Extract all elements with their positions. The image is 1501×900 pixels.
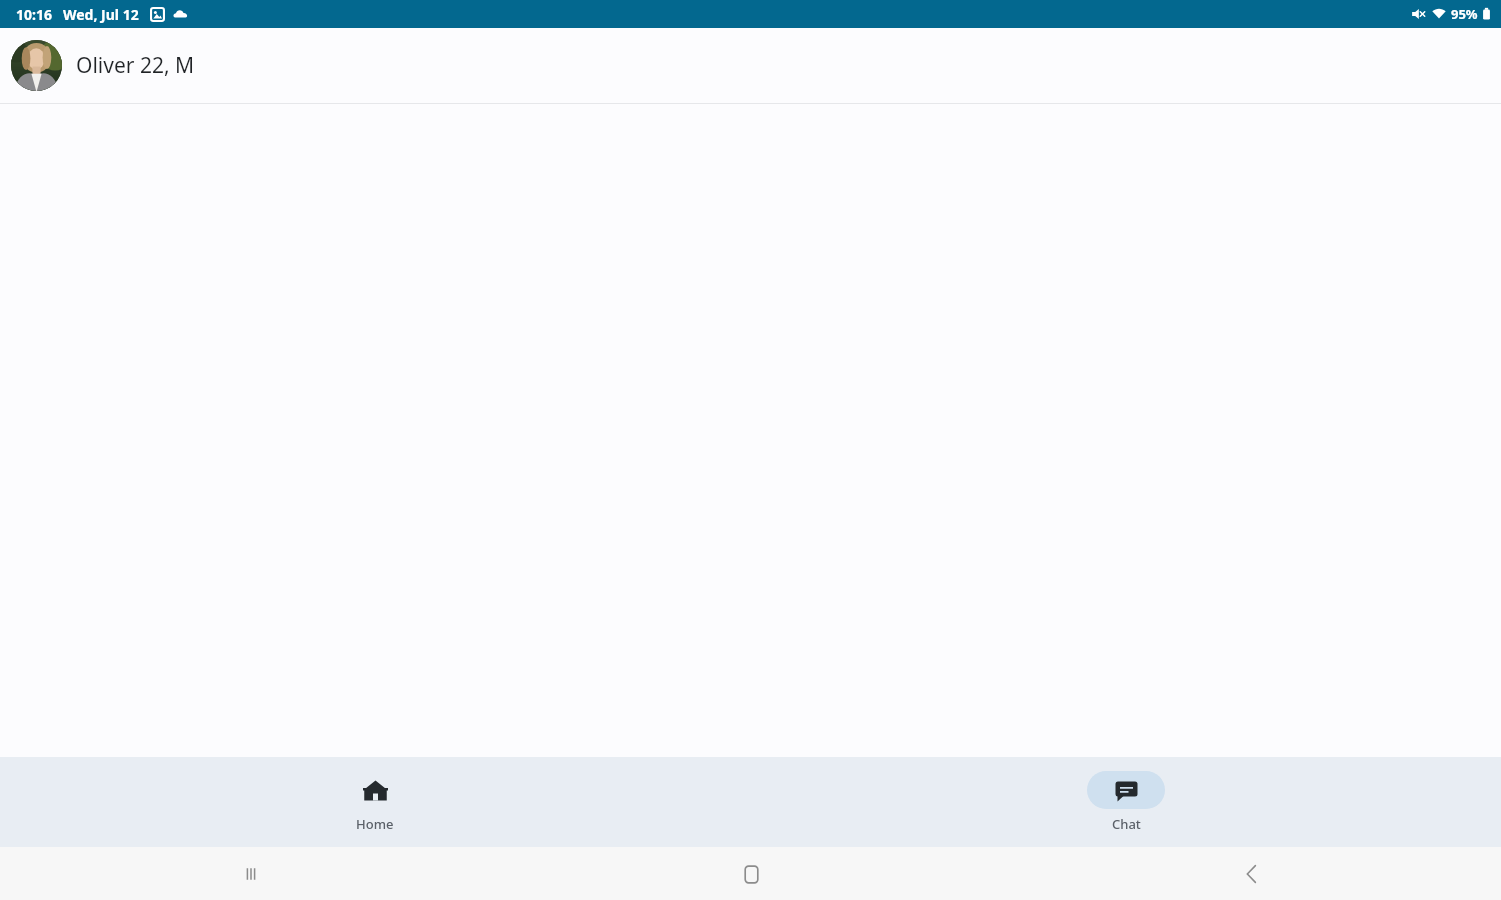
staticText: Home: [356, 815, 394, 833]
button[interactable]: Back: [1227, 850, 1275, 898]
staticText: 10:16: [16, 5, 52, 24]
button[interactable]: Chat: [1075, 767, 1177, 837]
button[interactable]: Home: [324, 767, 426, 837]
other: Profile photo: [11, 40, 62, 91]
staticText: Chat: [1112, 815, 1141, 833]
staticText: 95%: [1451, 5, 1478, 23]
button[interactable]: Home: [727, 850, 775, 898]
button[interactable]: Profile photo: [0, 28, 1501, 103]
staticText: Wed, Jul 12: [63, 5, 139, 24]
button[interactable]: Recent apps: [227, 850, 275, 898]
staticText: Oliver 22, M: [76, 51, 195, 80]
